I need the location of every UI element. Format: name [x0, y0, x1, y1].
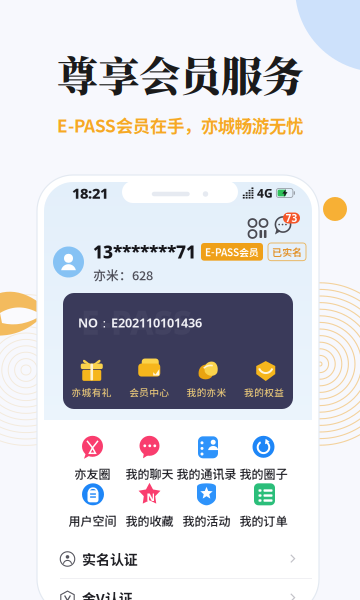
- button[interactable]: 我的订单: [235, 486, 292, 526]
- button[interactable]: 我的活动: [178, 486, 235, 526]
- staticText: N: [146, 490, 155, 504]
- staticText: 13*******71: [93, 240, 196, 264]
- button[interactable]: 会员中心: [120, 358, 178, 400]
- button[interactable]: 用户空间: [64, 486, 121, 526]
- staticText: 会员中心: [129, 385, 169, 399]
- staticText: E-PASS会员: [205, 245, 259, 259]
- button[interactable]: 消息: [268, 209, 300, 237]
- staticText: E-PASS会员在手，亦城畅游无忧: [57, 112, 303, 137]
- button[interactable]: 亦城有礼: [63, 358, 120, 400]
- staticText: 亦米：628: [93, 266, 153, 284]
- button[interactable]: 亦友圈: [64, 439, 121, 479]
- staticText: 我的亦米: [187, 385, 227, 399]
- staticText: 我的聊天: [125, 465, 173, 482]
- button[interactable]: 13*******71: [44, 238, 312, 286]
- button[interactable]: 我的聊天: [121, 439, 178, 479]
- staticText: 实名认证: [82, 549, 138, 569]
- staticText: 我的订单: [239, 512, 287, 529]
- staticText: 我的通讯录: [176, 465, 236, 482]
- staticText: 我的权益: [244, 385, 284, 399]
- button[interactable]: 我的通讯录: [178, 439, 235, 479]
- button[interactable]: 我的亦米: [178, 358, 235, 400]
- staticText: 18:21: [72, 183, 108, 203]
- staticText: 亦友圈: [74, 465, 110, 482]
- button[interactable]: 我的圈子: [235, 439, 292, 479]
- button[interactable]: 金V认证: [44, 579, 312, 600]
- staticText: 我的活动: [182, 512, 230, 529]
- staticText: 4G: [257, 185, 273, 201]
- button[interactable]: 实名认证: [44, 540, 312, 578]
- staticText: 用户空间: [68, 512, 116, 529]
- staticText: 亦城有礼: [72, 385, 112, 399]
- staticText: E-PASS: [81, 299, 192, 344]
- staticText: 我的圈子: [239, 465, 287, 482]
- button[interactable]: 扫一扫: [237, 207, 268, 238]
- staticText: 已实名: [272, 245, 302, 259]
- staticText: NO：E202110101436: [78, 314, 202, 331]
- staticText: 尊享会员服务: [57, 44, 303, 103]
- staticText: 73: [285, 211, 297, 225]
- button[interactable]: N: [121, 486, 178, 526]
- button[interactable]: 我的权益: [235, 358, 293, 400]
- staticText: 我的收藏: [125, 512, 173, 529]
- staticText: 金V认证: [82, 588, 133, 600]
